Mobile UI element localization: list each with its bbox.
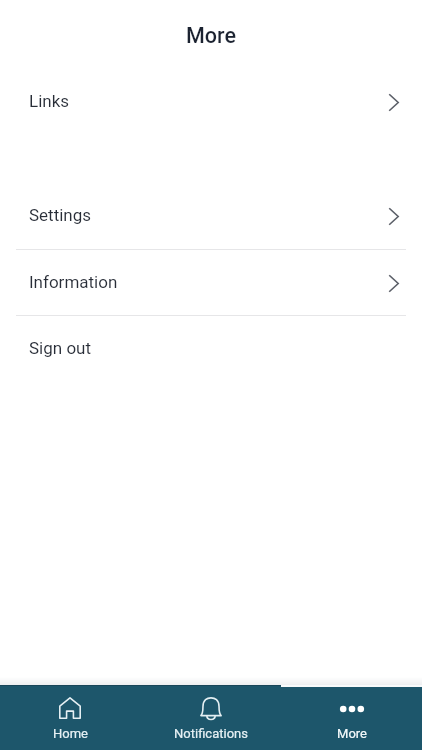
staticText: More (337, 726, 367, 741)
staticText: Notifications (174, 726, 248, 741)
staticText: Sign out (29, 338, 92, 358)
other: More (339, 697, 365, 721)
button[interactable]: Notifications (140, 685, 281, 750)
staticText: Home (53, 726, 88, 741)
button[interactable]: Links (0, 68, 422, 134)
other: Home (59, 697, 81, 719)
button[interactable]: Sign out (0, 315, 422, 381)
button[interactable]: Home (0, 685, 140, 750)
staticText: Settings (29, 205, 92, 225)
staticText: Information (29, 272, 118, 292)
staticText: More (186, 23, 236, 48)
other: Notifications (200, 697, 222, 721)
button[interactable]: Settings (0, 182, 422, 248)
button[interactable]: More (281, 685, 422, 750)
button[interactable]: Information (0, 249, 422, 315)
staticText: Links (29, 91, 70, 111)
